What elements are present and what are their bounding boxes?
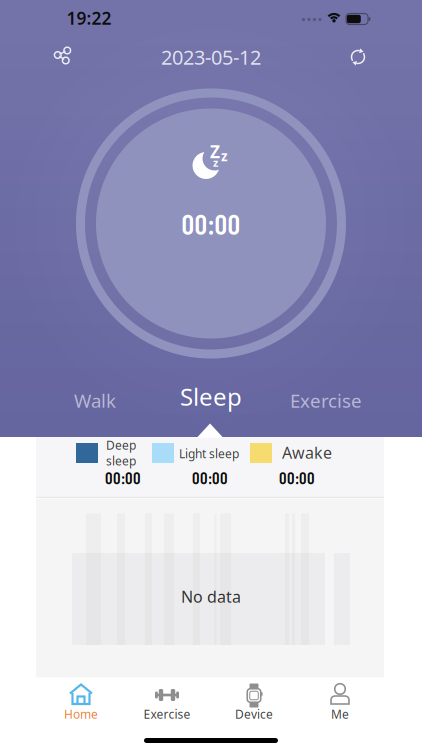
button[interactable]: Walk [50,383,140,417]
staticText: Deep [106,437,136,453]
staticText: 19:22 [66,6,111,29]
staticText: 2023-05-12 [161,44,261,70]
staticText: Exercise [143,706,190,722]
button[interactable]: Exercise [281,383,371,417]
button[interactable]: Me [300,672,380,728]
staticText: Light sleep [179,445,239,461]
staticText: 00:00 [192,467,228,487]
staticText: Device [235,706,273,722]
staticText: 00:00 [279,467,315,487]
staticText: Exercise [290,388,362,413]
staticText: Sleep [180,381,242,412]
button[interactable]: Sleep [166,379,256,413]
button[interactable]: Share [40,35,84,75]
staticText: Walk [74,388,116,413]
staticText: Me [331,706,349,722]
button[interactable]: Exercise [127,672,207,728]
button[interactable]: Device [214,672,294,728]
staticText: Home [64,706,98,722]
staticText: No data [181,586,241,607]
staticText: Awake [282,442,332,463]
button[interactable]: Refresh [336,37,380,77]
staticText: Z [210,140,220,163]
staticText: sleep [106,453,136,469]
staticText: z [221,147,228,165]
button[interactable]: Home [41,672,121,728]
staticText: 00:00 [181,207,240,240]
staticText: z [213,155,218,170]
staticText: 00:00 [105,467,141,487]
